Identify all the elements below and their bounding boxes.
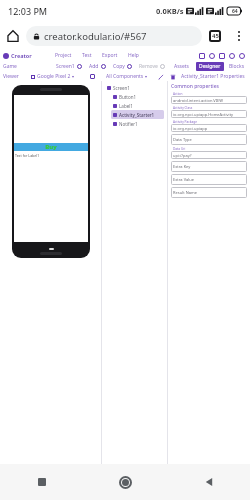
button[interactable]: Blocks	[227, 63, 247, 70]
button[interactable]: Export	[97, 52, 123, 59]
staticText: Data Type	[173, 137, 192, 142]
button[interactable]: More options	[228, 25, 250, 47]
staticText: Creator	[11, 52, 32, 59]
staticText: Action	[173, 92, 183, 96]
button[interactable]: android.intent.action.VIEW	[171, 96, 247, 104]
staticText: 12:03 PM	[8, 5, 48, 17]
staticText: upi://pay?pa=7987293919@fedbankfav	[173, 153, 245, 158]
button[interactable]: All Components	[106, 73, 148, 80]
button[interactable]: Label1	[111, 101, 164, 110]
staticText: io.org.npci.upiapp	[173, 126, 208, 131]
button[interactable]: Result Name	[171, 187, 247, 198]
staticText: creator.kodular.io/#567	[44, 30, 147, 43]
button[interactable]: Home	[84, 464, 167, 500]
button[interactable]: Test	[77, 52, 97, 59]
button[interactable]: Help	[123, 52, 144, 59]
staticText: Remove	[139, 63, 158, 70]
button[interactable]: Extra Value	[171, 174, 247, 185]
staticText: Buy	[45, 143, 57, 151]
button[interactable]: Copy	[113, 63, 132, 70]
button[interactable]: Extra Key	[171, 161, 247, 172]
staticText: Label1	[119, 103, 133, 109]
button[interactable]: Toolbar action 4	[227, 51, 237, 61]
staticText: 45	[212, 32, 219, 40]
button[interactable]: Toolbar action 3	[217, 51, 227, 61]
button[interactable]: Notifier1	[111, 119, 164, 128]
button[interactable]: Back	[167, 464, 250, 500]
staticText: Screen1	[56, 63, 75, 70]
button[interactable]: io.org.npci.upiapp.HomeActivity	[171, 110, 247, 118]
staticText: Activity_Starter1	[119, 112, 155, 118]
staticText: Activity Class	[173, 106, 193, 110]
staticText: ▾	[72, 74, 75, 79]
staticText: Designer	[199, 63, 221, 70]
button[interactable]: Rename	[156, 72, 165, 81]
staticText: Extra Key	[173, 164, 191, 169]
staticText: All Components	[106, 73, 144, 80]
staticText: Project	[55, 52, 72, 59]
staticText: io.org.npci.upiapp.HomeActivity	[173, 112, 234, 117]
button[interactable]: Button1	[111, 92, 164, 101]
staticText: Notifier1	[119, 121, 138, 127]
button[interactable]: Tabs	[202, 23, 228, 49]
button[interactable]: io.org.npci.upiapp	[171, 124, 247, 132]
staticText: Blocks	[229, 63, 245, 70]
staticText: Export	[102, 52, 118, 59]
staticText: Activity_Starter1 Properties	[181, 73, 245, 80]
staticText: Assets	[174, 63, 190, 70]
button[interactable]: Google Pixel 2	[31, 73, 75, 80]
button[interactable]: Data Type	[171, 134, 247, 145]
staticText: Common properties	[171, 83, 220, 90]
button[interactable]: upi://pay?pa=7987293919@fedbankfav	[171, 151, 247, 159]
staticText: Viewer	[3, 73, 19, 80]
button[interactable]: Toolbar action 5	[237, 51, 247, 61]
staticText: Game	[3, 63, 17, 70]
button[interactable]: Screen1	[105, 83, 164, 92]
button[interactable]: Screen1	[56, 63, 82, 70]
button[interactable]: Toolbar action 2	[207, 51, 217, 61]
staticText: Google Pixel 2	[37, 73, 71, 80]
button[interactable]: Recent apps	[0, 464, 84, 500]
button[interactable]: Activity_Starter1	[111, 110, 164, 119]
staticText: Screen1	[113, 85, 130, 91]
button[interactable]: Toggle view	[88, 72, 96, 80]
staticText: Add	[89, 63, 99, 70]
staticText: Activity Package	[173, 120, 198, 124]
staticText: 64	[232, 8, 238, 15]
staticText: ▾	[145, 74, 148, 79]
button[interactable]: Assets	[172, 63, 192, 70]
button[interactable]: Home	[0, 23, 26, 49]
button[interactable]: Designer	[196, 62, 224, 71]
button[interactable]: Add	[89, 63, 106, 70]
button[interactable]: creator.kodular.io/#567	[26, 26, 202, 46]
staticText: 0.0KB/s	[156, 6, 184, 16]
staticText: android.intent.action.VIEW	[173, 98, 223, 103]
button[interactable]: Toolbar action 1	[197, 51, 207, 61]
staticText: Extra Value	[173, 177, 194, 182]
button[interactable]: Delete	[168, 72, 177, 81]
button[interactable]: Buy	[14, 143, 88, 151]
button[interactable]: Remove	[139, 63, 165, 70]
staticText: Copy	[113, 63, 125, 70]
staticText: Help	[128, 52, 139, 59]
staticText: Result Name	[173, 190, 197, 195]
staticText: Button1	[119, 94, 137, 100]
staticText: Test	[82, 52, 92, 59]
button[interactable]: Project	[50, 52, 77, 59]
staticText: Text for Label1	[15, 153, 40, 158]
staticText: Data Uri	[173, 147, 186, 151]
